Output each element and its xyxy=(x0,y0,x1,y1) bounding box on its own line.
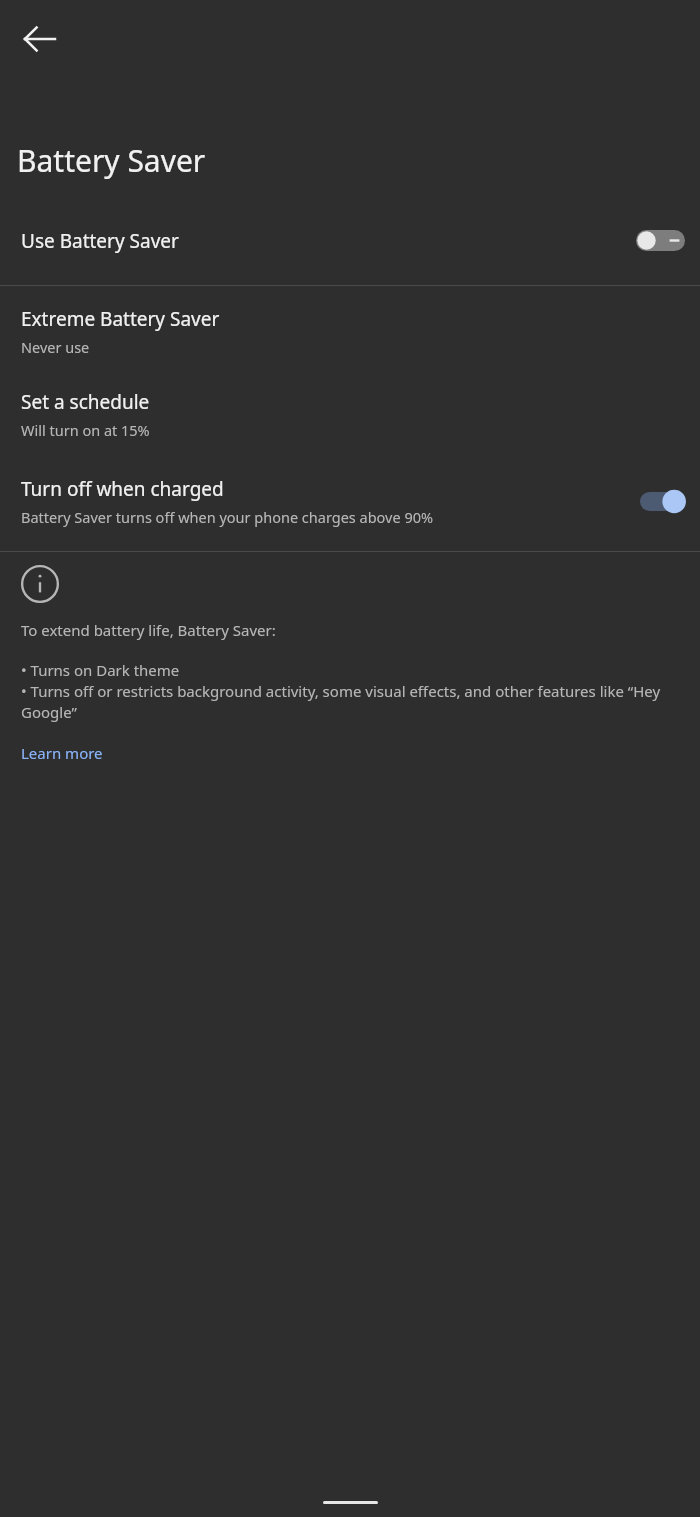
button[interactable]: Learn more xyxy=(21,743,103,763)
button[interactable]: Set a schedule xyxy=(0,385,700,446)
staticText: • Turns on Dark theme • Turns off or res… xyxy=(21,660,684,723)
staticText: Will turn on at 15% xyxy=(21,420,150,440)
staticText: Battery Saver turns off when your phone … xyxy=(21,507,434,527)
staticText: Set a schedule xyxy=(21,389,150,415)
button[interactable]: Use Battery Saver xyxy=(0,218,700,263)
button[interactable]: Back xyxy=(16,15,64,63)
staticText: Battery Saver xyxy=(17,140,206,181)
staticText: Extreme Battery Saver xyxy=(21,306,220,332)
staticText: Learn more xyxy=(21,743,103,763)
button[interactable]: Extreme Battery Saver xyxy=(0,286,700,363)
staticText: Use Battery Saver xyxy=(21,228,636,254)
staticText: Turn off when charged xyxy=(21,476,224,502)
button[interactable]: Turn off when charged xyxy=(0,472,700,535)
staticText: Never use xyxy=(21,337,90,357)
staticText: To extend battery life, Battery Saver: xyxy=(21,620,276,640)
